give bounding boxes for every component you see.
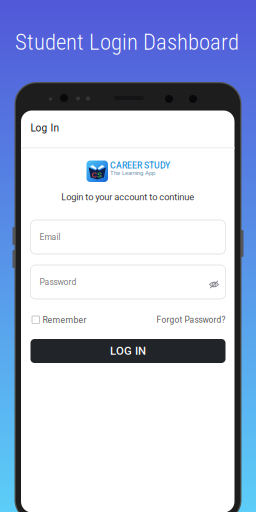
staticText: The Learning App [110,169,155,177]
staticText: C [91,170,96,179]
staticText: Log In [30,122,59,134]
staticText: Email [39,232,60,242]
staticText: CAREER STUDY [110,160,170,171]
staticText: Password [39,277,76,287]
staticText: Login to your account to continue [61,191,194,202]
staticText: S [97,170,102,179]
button[interactable]: LOG IN [30,339,225,363]
staticText: Remember [42,315,86,325]
staticText: Forgot Password? [156,315,225,325]
button[interactable]: Show password [207,277,220,290]
staticText: LOG IN [110,344,146,358]
staticText: Student Login Dashboard [15,29,239,55]
